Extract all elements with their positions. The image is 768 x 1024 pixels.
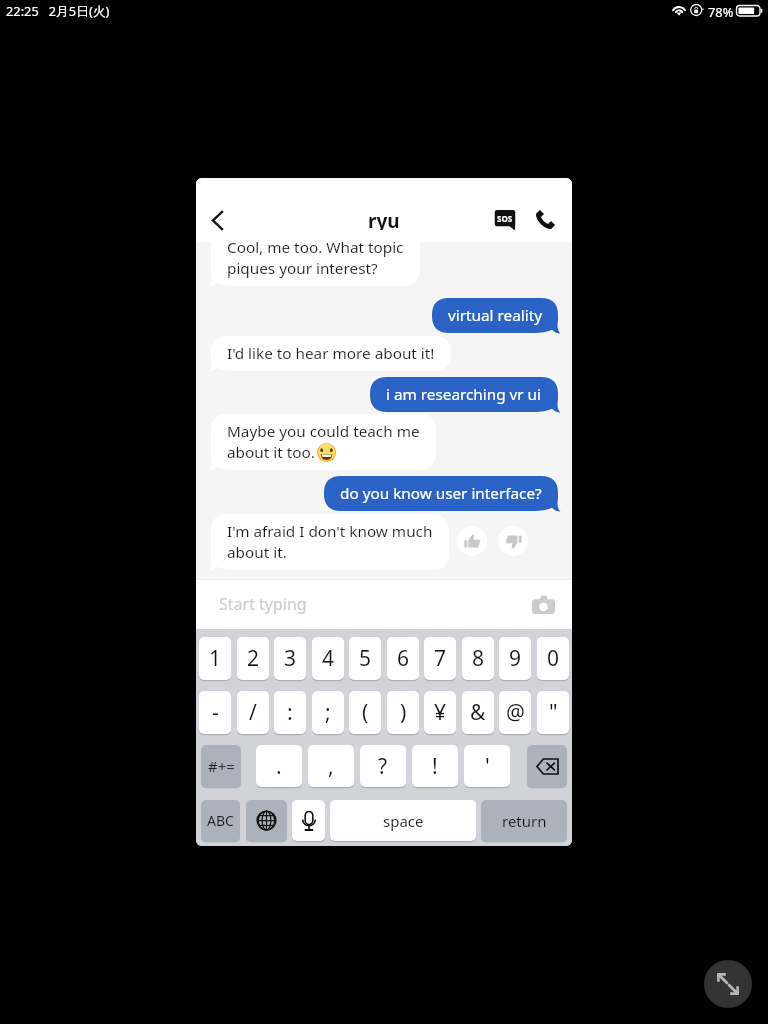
button[interactable]: 2 [237,637,269,680]
button[interactable]: 8 [462,637,494,680]
staticText: ABC [207,811,234,830]
button[interactable]: 3 [274,637,306,680]
staticText: virtual reality [448,305,542,326]
button[interactable]: Call [527,198,562,242]
staticText: ? [378,752,388,781]
button[interactable]: 4 [312,637,344,680]
staticText: do you know user interface? [340,483,542,504]
staticText: SOS [497,213,513,224]
button[interactable]: Thumbs down [498,526,528,556]
button[interactable]: virtual reality [432,298,567,333]
button[interactable]: ABC [201,800,240,841]
staticText: I'd like to hear more about it! [227,343,435,364]
staticText: Start typing [219,593,307,615]
staticText: Maybe you could teach me about it too. [227,421,420,463]
staticText: & [470,698,486,727]
button[interactable]: space [330,800,476,841]
staticText: : [287,698,293,727]
staticText: 8 [472,644,485,673]
button[interactable]: Change keyboard [246,800,287,841]
button[interactable]: & [462,691,494,734]
button[interactable]: 0 [537,637,569,680]
button[interactable]: @ [499,691,531,734]
button[interactable]: #+= [201,745,241,787]
button[interactable]: ; [312,691,344,734]
button[interactable]: ¥ [424,691,456,734]
staticText: Cool, me too. What topic piques your int… [227,237,404,279]
button[interactable]: i am researching vr ui [370,377,567,412]
button[interactable]: Resize window [704,960,752,1008]
button[interactable]: Delete [527,745,567,787]
staticText: ( [362,698,369,727]
staticText: 0 [547,644,560,673]
staticText: ) [400,698,407,727]
button[interactable]: return [481,800,567,841]
button[interactable]: Voice input [292,800,325,841]
button[interactable]: - [199,691,231,734]
staticText: , [328,752,334,781]
staticText: " [549,698,558,727]
button[interactable]: , [308,745,354,787]
staticText: . [276,752,282,781]
button[interactable]: Emergency SOS [488,198,522,242]
staticText: 2 [247,644,260,673]
staticText: ' [485,752,490,781]
button[interactable]: ) [387,691,419,734]
button[interactable]: 9 [499,637,531,680]
staticText: return [502,811,547,831]
button[interactable]: I'm afraid I don't know much about it. [202,514,449,570]
button[interactable]: Camera [527,588,559,620]
staticText: ! [432,752,438,781]
staticText: space [383,811,424,831]
staticText: 1 [209,644,222,673]
button[interactable]: Thumbs up [457,526,487,556]
staticText: 7 [434,644,447,673]
staticText: ¥ [434,698,447,727]
staticText: / [249,698,257,727]
button[interactable]: ( [349,691,381,734]
button[interactable]: Maybe you could teach me about it too. [202,414,436,470]
staticText: 22:25 2月5日(火) [6,2,110,19]
staticText: i am researching vr ui [386,384,542,405]
button[interactable]: ' [464,745,510,787]
button[interactable]: : [274,691,306,734]
staticText: ; [325,698,331,727]
staticText: 5 [359,644,372,673]
button[interactable]: 7 [424,637,456,680]
staticText: 9 [509,644,522,673]
button[interactable]: do you know user interface? [324,476,567,511]
button[interactable]: / [237,691,269,734]
button[interactable]: . [256,745,302,787]
button[interactable]: 6 [387,637,419,680]
button[interactable]: 5 [349,637,381,680]
staticText: 6 [397,644,410,673]
staticText: ryu [368,208,400,234]
button[interactable]: I'd like to hear more about it! [202,336,451,371]
staticText: @ [506,698,525,727]
staticText: I'm afraid I don't know much about it. [227,521,433,563]
staticText: 78% [708,3,734,20]
staticText: - [212,698,219,727]
button[interactable]: " [537,691,569,734]
staticText: 3 [284,644,297,673]
button[interactable]: ? [360,745,406,787]
button[interactable]: Back [196,198,238,242]
staticText: #+= [208,756,235,776]
button[interactable]: Cool, me too. What topic piques your int… [202,230,420,286]
button[interactable]: 1 [199,637,231,680]
staticText: 4 [322,644,335,673]
button[interactable]: ! [412,745,458,787]
